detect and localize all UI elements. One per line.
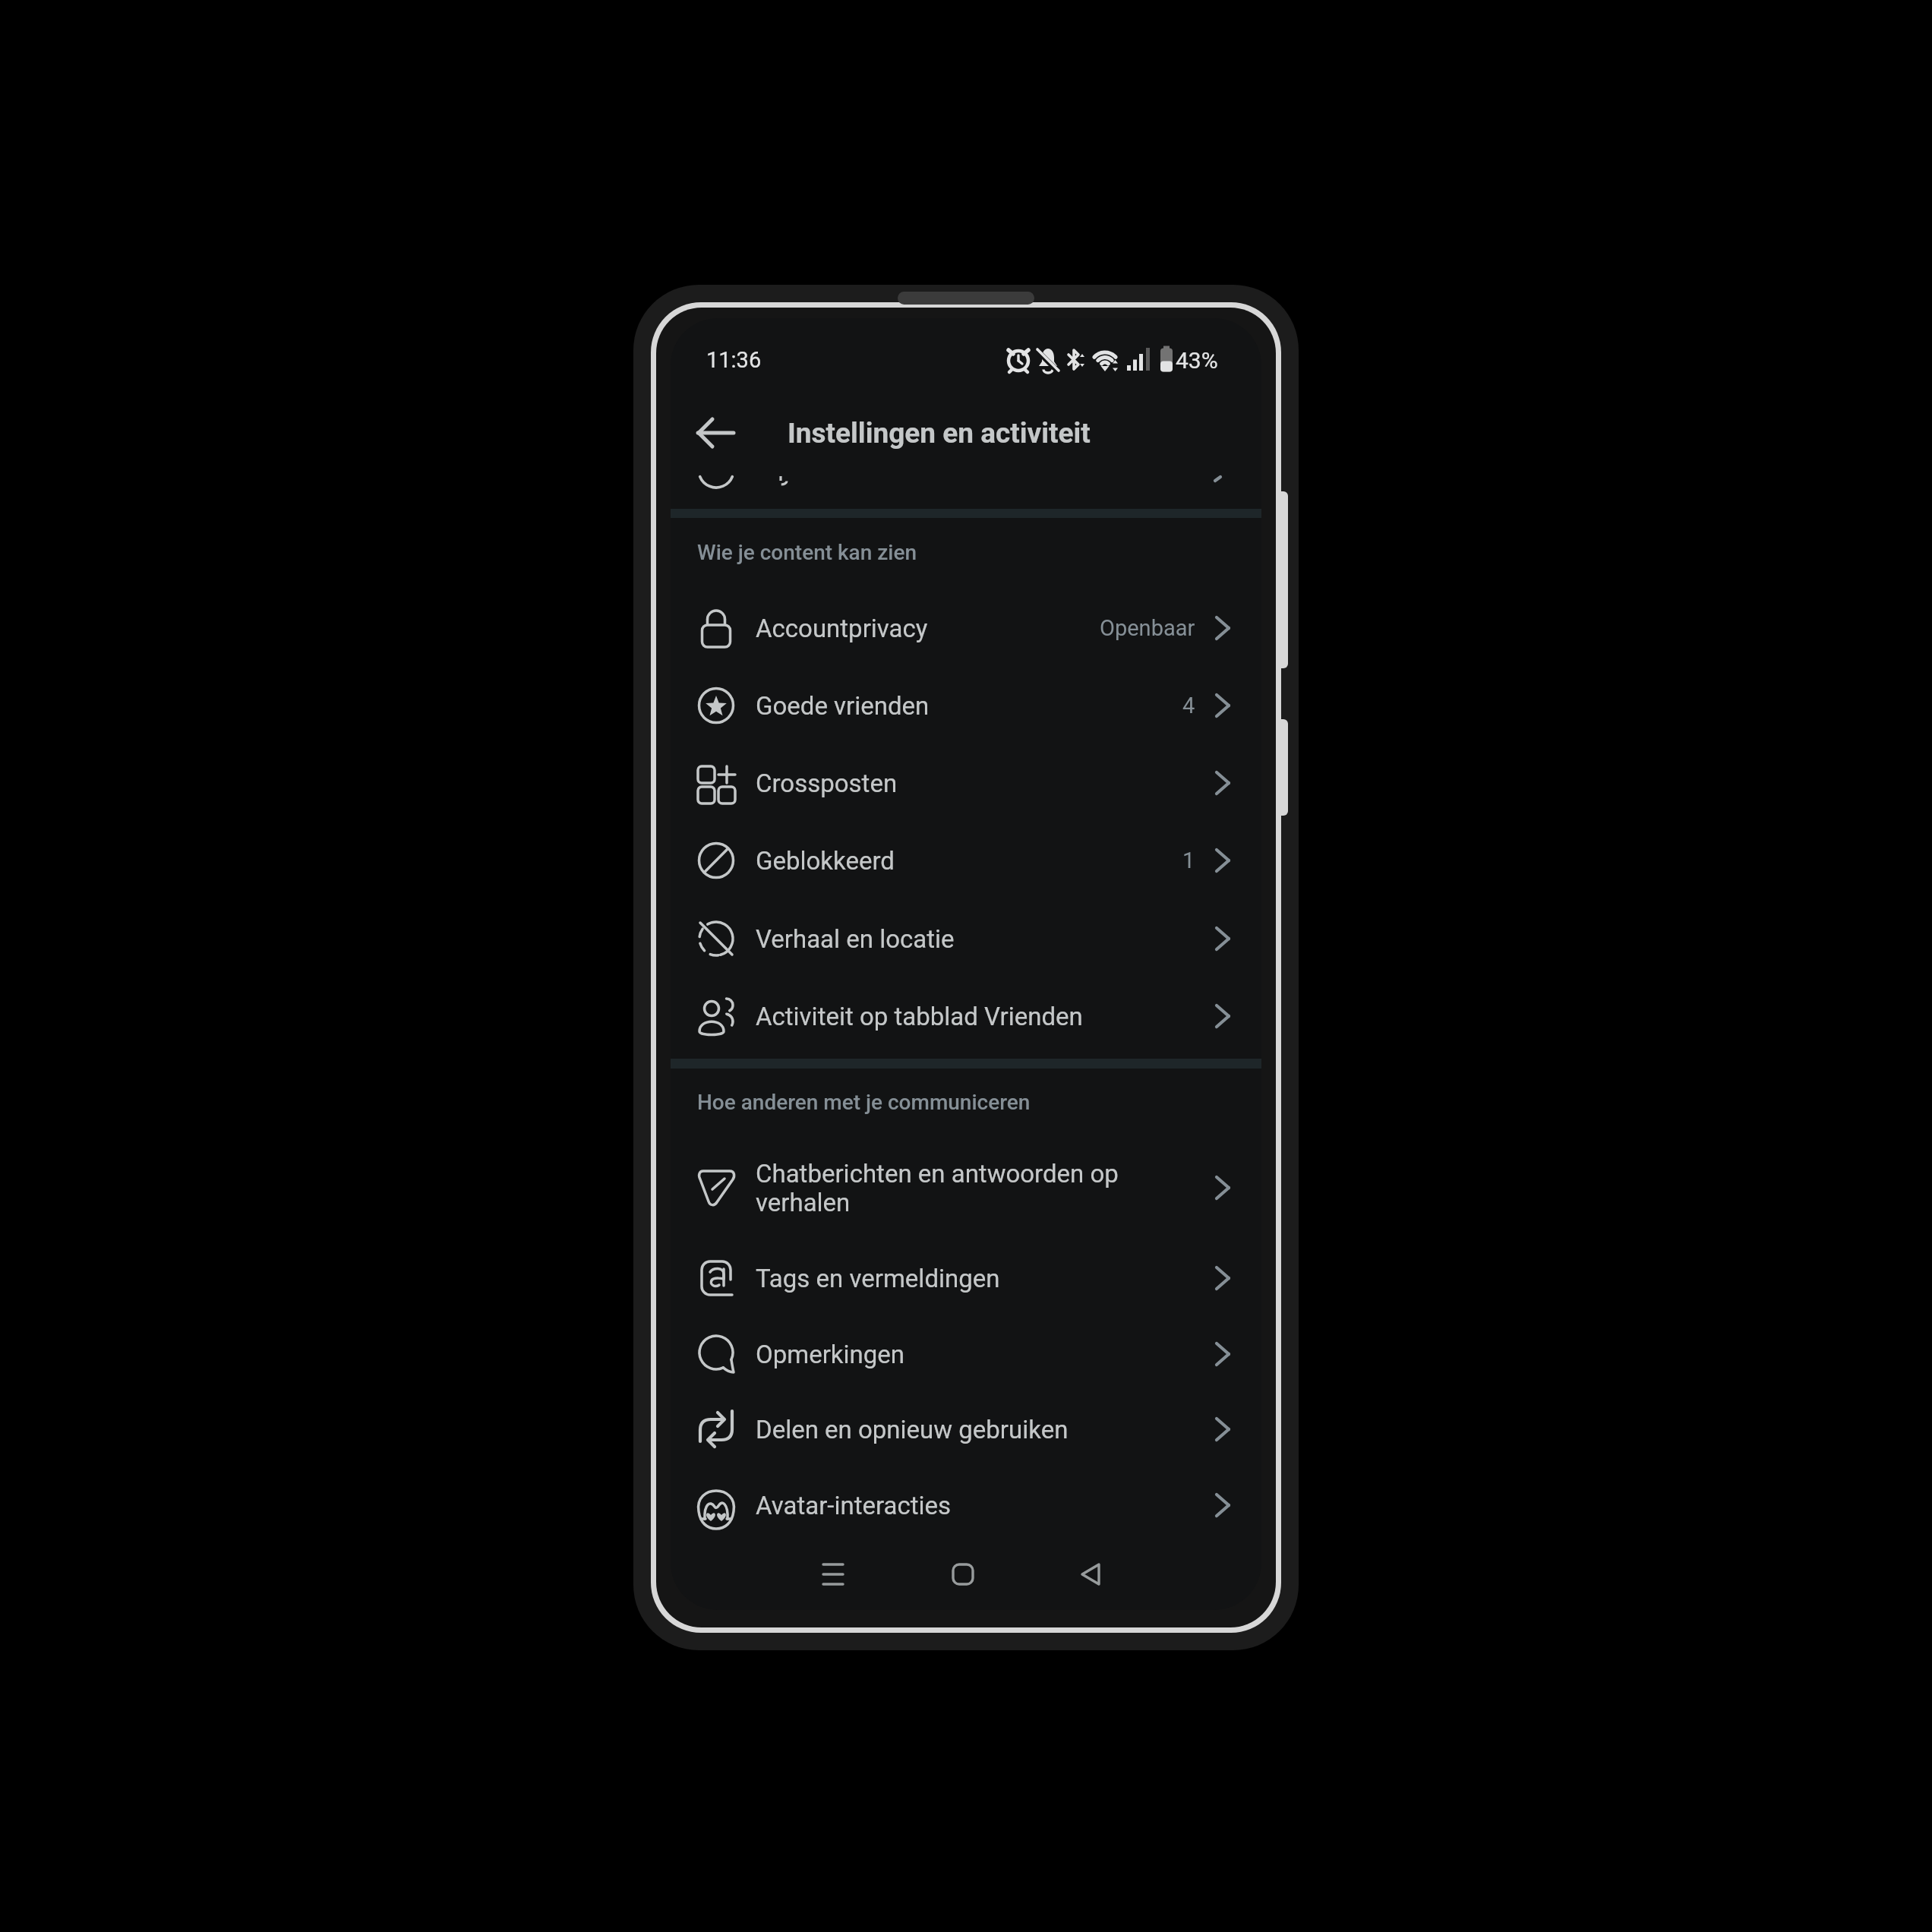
button[interactable]: Activiteit op tabblad Vrienden [671,977,1261,1055]
button[interactable]: Opmerkingen [671,1315,1261,1393]
button[interactable]: Goede vrienden [671,667,1261,744]
staticText: Wie je content kan zien [697,540,917,565]
button[interactable]: Crossposten [671,744,1261,822]
button[interactable]: Avatar-interacties [671,1466,1261,1544]
staticText: Instellingen en activiteit [788,417,1091,450]
staticText: 11:36 [706,347,762,373]
staticText: Crossposten [756,769,898,798]
button[interactable]: Startscherm [933,1544,993,1605]
staticText: 43% [1176,347,1218,374]
staticText: Opmerkingen [756,1340,905,1369]
staticText: Activiteit op tabblad Vrienden [756,1002,1083,1031]
button[interactable]: Delen en opnieuw gebruiken [671,1391,1261,1468]
staticText: Chatberichten en antwoorden op verhalen [756,1159,1119,1217]
staticText: Hoe anderen met je communiceren [697,1090,1031,1115]
button[interactable]: Verhaal en locatie [671,900,1261,977]
staticText: Tags en vermeldingen [756,1264,1000,1293]
button[interactable]: Terug [681,399,750,467]
staticText: 4 [1182,693,1195,718]
staticText: Openbaar [1100,615,1195,641]
staticText: Goede vrienden [756,691,930,721]
button[interactable]: Terug [1061,1544,1122,1605]
staticText: 1 [1182,848,1195,873]
staticText: Avatar-interacties [756,1491,952,1520]
staticText: Accountprivacy [756,614,928,643]
button[interactable]: Geblokkeerd [671,822,1261,899]
staticText: Geblokkeerd [756,846,895,876]
staticText: Verhaal en locatie [756,924,955,954]
button[interactable]: Chatberichten en antwoorden op verhalen [671,1135,1261,1241]
button[interactable]: Accountprivacy [671,589,1261,667]
button[interactable]: Recente apps [803,1544,863,1605]
button[interactable]: Tags en vermeldingen [671,1239,1261,1317]
staticText: Delen en opnieuw gebruiken [756,1415,1069,1444]
